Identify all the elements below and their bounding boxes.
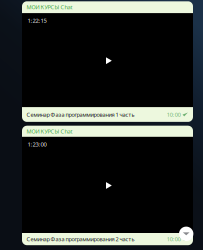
staticText: Семинар Фаза программирования 1 часть xyxy=(26,111,134,118)
staticText: 1:22:15 xyxy=(27,17,46,25)
button[interactable]: МОИ КУРСЫ Chat xyxy=(22,1,193,122)
staticText: 1:23:00 xyxy=(27,140,46,148)
staticText: 10:00 xyxy=(167,111,181,118)
staticText: МОИ КУРСЫ Chat xyxy=(26,127,72,135)
staticText: Семинар Фаза программирования 2 часть xyxy=(26,235,134,243)
staticText: МОИ КУРСЫ Chat xyxy=(26,3,72,11)
button[interactable]: МОИ КУРСЫ Chat xyxy=(22,126,193,245)
staticText: 10:00 xyxy=(167,235,181,243)
button[interactable]: Scroll to bottom xyxy=(179,227,193,241)
